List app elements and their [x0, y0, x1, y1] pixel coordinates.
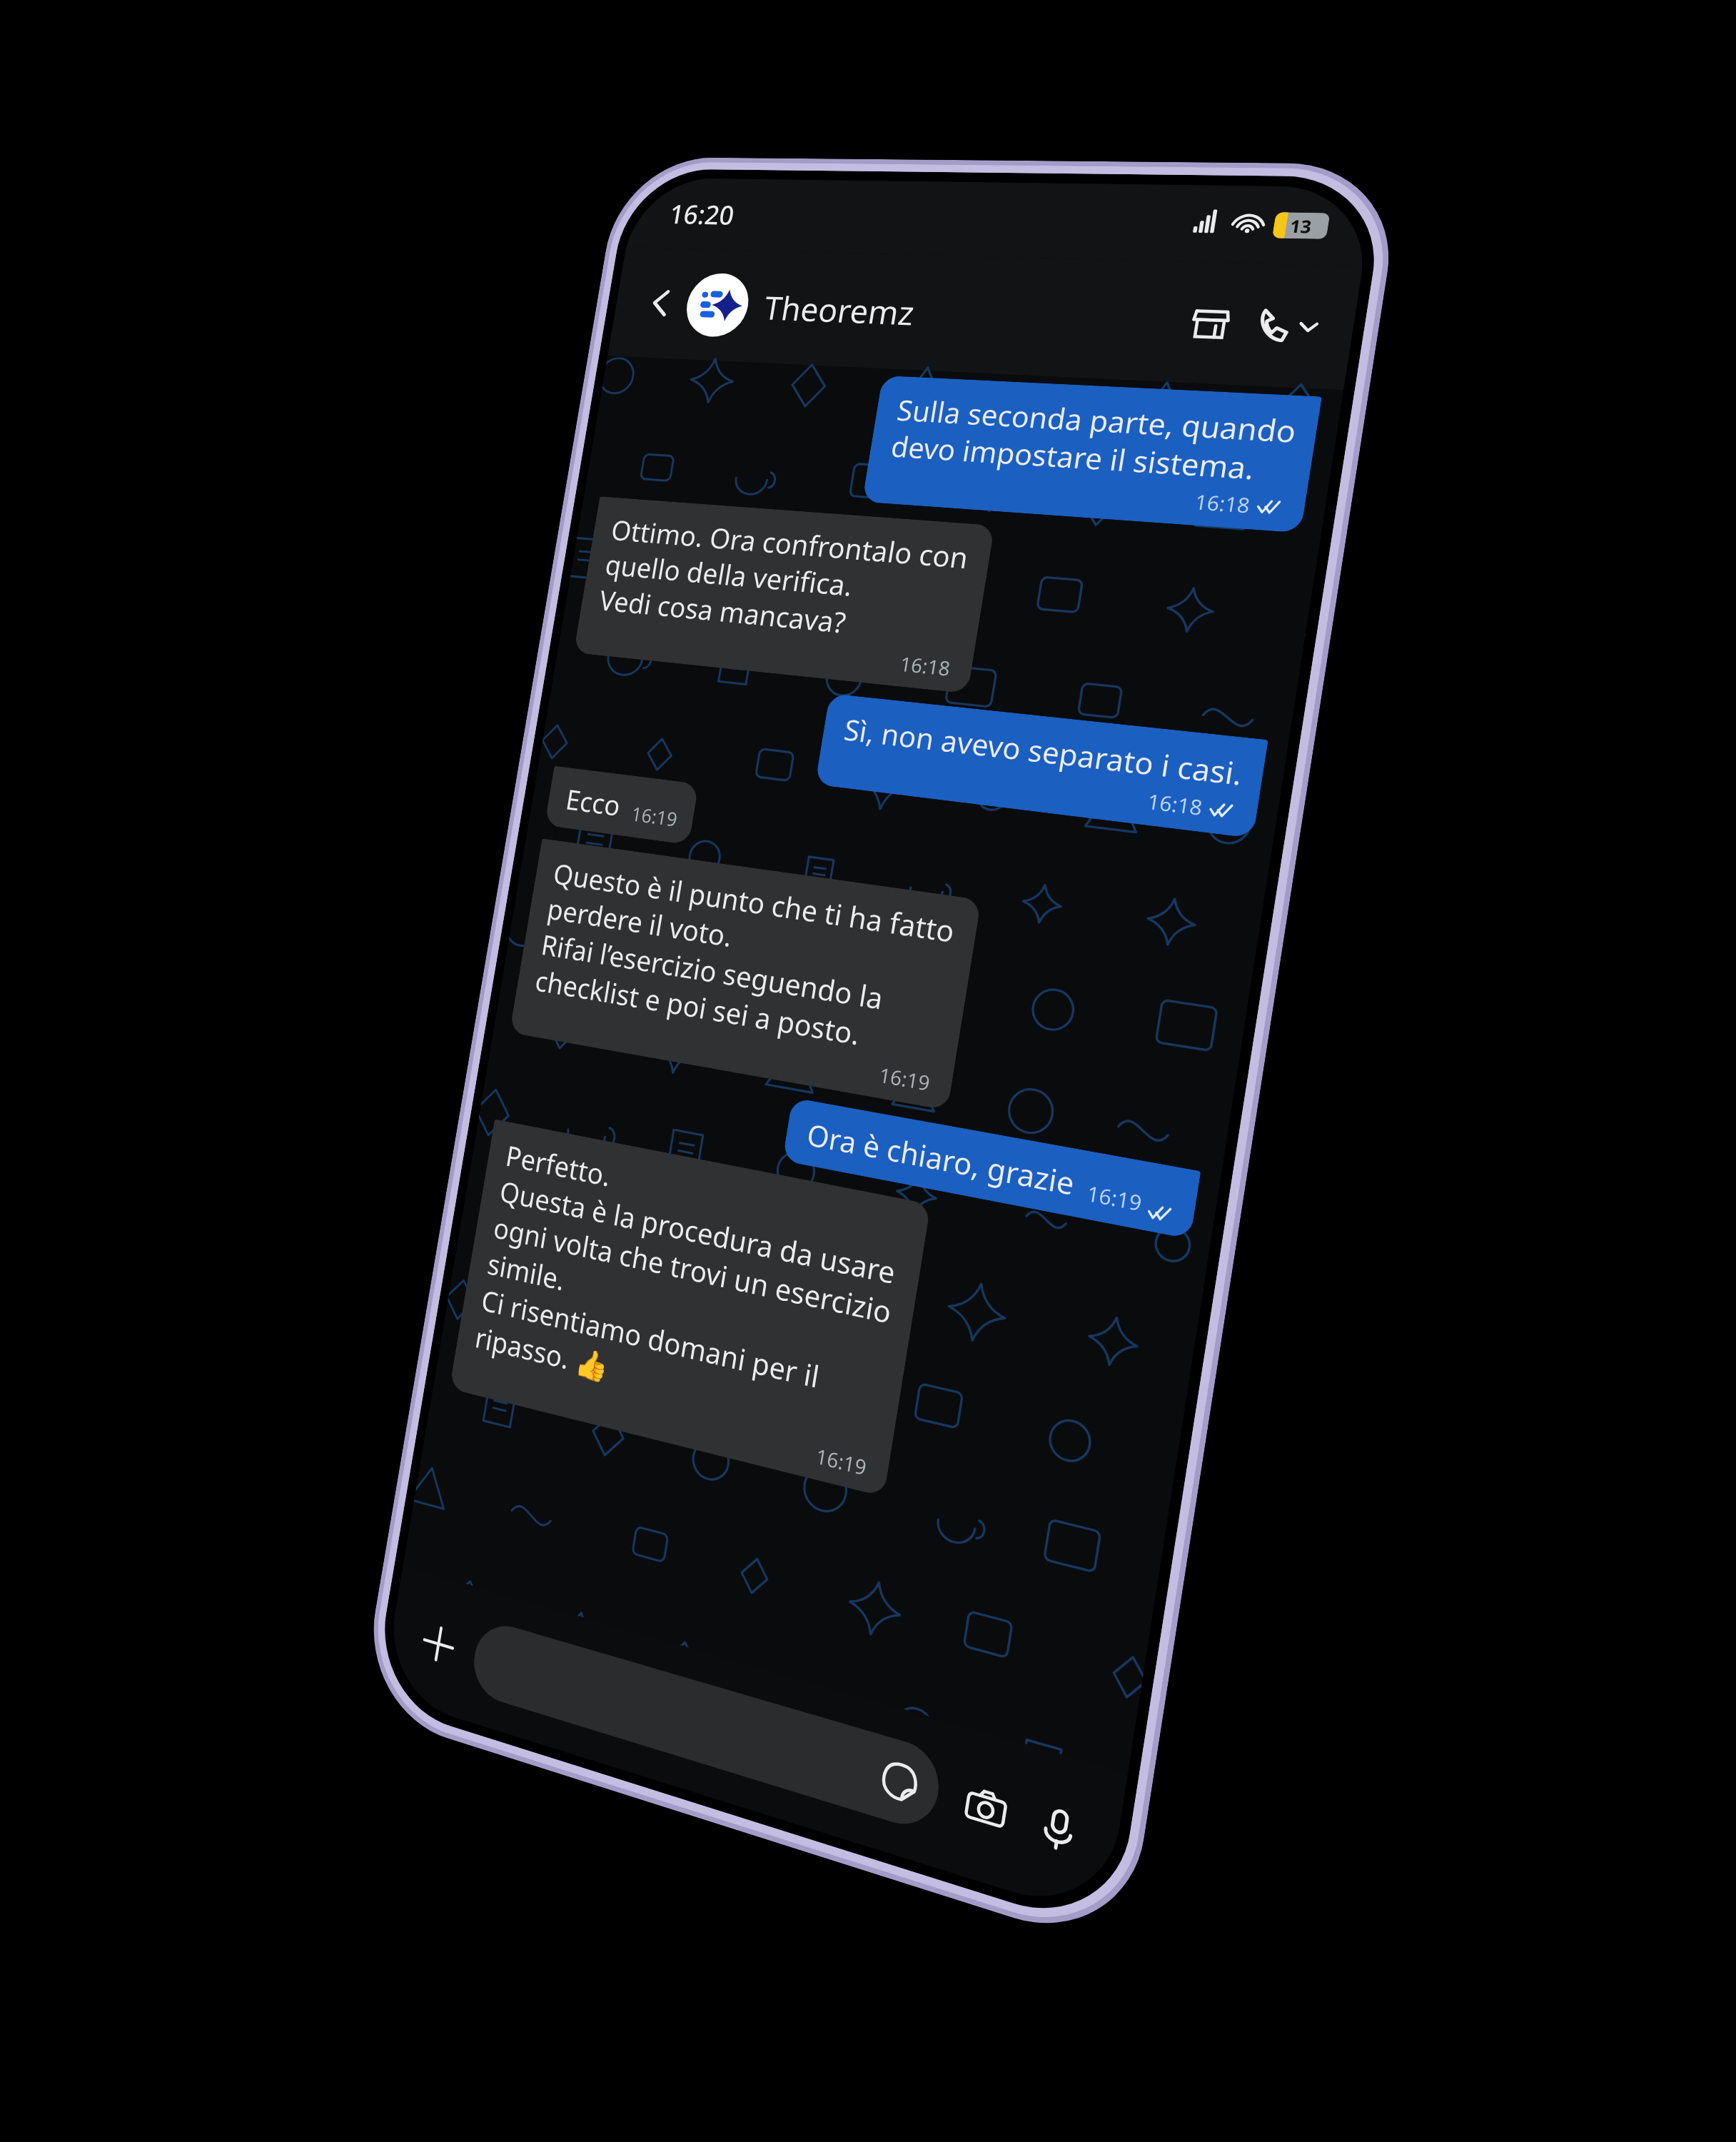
button[interactable]: Back [634, 278, 687, 328]
staticText: Perfetto. Questa è la procedura da usare… [473, 1136, 907, 1451]
button[interactable]: Attach [408, 1607, 470, 1681]
button[interactable]: Ora è chiaro, grazie [782, 1097, 1201, 1239]
staticText: 16:18 [1193, 488, 1252, 519]
button[interactable]: Sì, non avevo separato i casi. [815, 693, 1268, 838]
staticText: Ecco [563, 780, 623, 824]
button[interactable]: Perfetto. Questa è la procedura da usare… [449, 1119, 931, 1497]
button[interactable]: Business catalog [1175, 293, 1246, 354]
button[interactable]: Ecco [544, 766, 699, 845]
other: Stickers [877, 1756, 922, 1808]
button[interactable]: Ottimo. Ora confrontalo con quello della… [573, 496, 995, 694]
button[interactable]: Questo è il punto che ti ha fatto perder… [509, 838, 981, 1110]
button[interactable]: Voice message [1022, 1789, 1095, 1871]
button[interactable]: Stickers [468, 1618, 945, 1834]
staticText: Questo è il punto che ti ha fatto perder… [533, 854, 958, 1067]
staticText: 16:18 [898, 650, 952, 682]
staticText: 16:19 [877, 1061, 932, 1097]
staticText: 16:20 [667, 196, 737, 232]
staticText: Sulla seconda parte, quando devo imposta… [888, 390, 1299, 490]
staticText: 16:18 [1146, 787, 1205, 821]
staticText: 16:19 [814, 1441, 869, 1481]
staticText: 16:19 [1085, 1179, 1144, 1217]
staticText: Theoremz [761, 286, 918, 335]
staticText: Ottimo. Ora confrontalo con quello della… [597, 511, 971, 652]
button[interactable]: Call [1244, 300, 1330, 352]
button[interactable]: Sulla seconda parte, quando devo imposta… [862, 375, 1322, 533]
button[interactable]: Camera [951, 1768, 1022, 1848]
staticText: 16:19 [630, 800, 679, 832]
staticText: Ora è chiaro, grazie [804, 1114, 1078, 1204]
staticText: Sì, non avevo separato i casi. [841, 709, 1246, 794]
staticText: 13 [1288, 214, 1314, 238]
button[interactable]: Theoremz [682, 273, 1185, 356]
